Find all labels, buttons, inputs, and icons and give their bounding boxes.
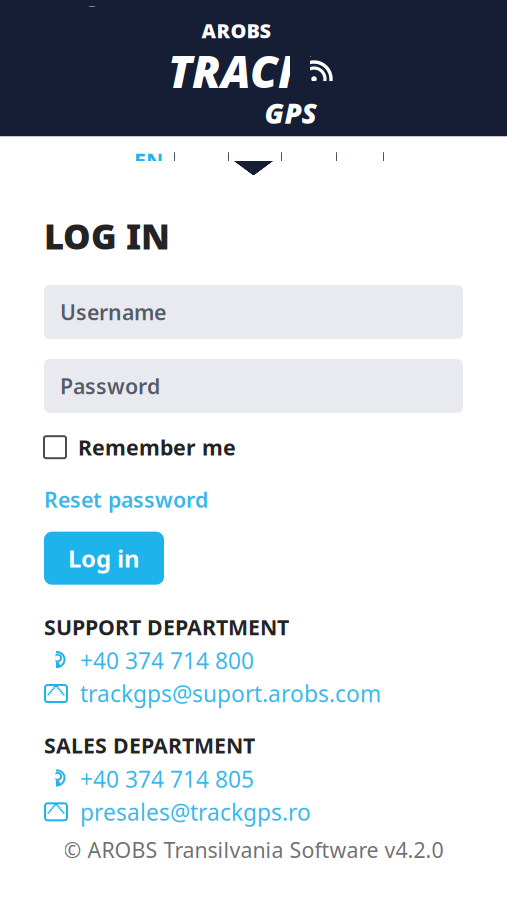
staticText: LOG IN — [44, 213, 170, 259]
staticText: trackgps@suport.arobs.com — [80, 678, 381, 709]
button[interactable]: Log in — [44, 532, 164, 585]
staticText: © AROBS Transilvania Software v4.2.0 — [63, 836, 443, 864]
staticText: Reset password — [44, 485, 208, 514]
staticText: Username — [60, 298, 166, 326]
staticText: TRACK — [168, 42, 307, 100]
button[interactable]: RU — [229, 143, 281, 178]
button[interactable]: presales@trackgps.ro — [44, 796, 463, 827]
button[interactable]: +40 374 714 805 — [44, 763, 463, 794]
staticText: RU — [240, 146, 270, 175]
staticText: SALES DEPARTMENT — [44, 731, 255, 759]
button[interactable]: Reset password — [44, 485, 208, 514]
staticText: GPS — [264, 94, 316, 131]
staticText: Password — [60, 372, 160, 400]
button[interactable]: trackgps@suport.arobs.com — [44, 678, 463, 709]
staticText: SUPPORT DEPARTMENT — [44, 613, 289, 641]
button[interactable]: EN — [123, 143, 174, 178]
button[interactable]: +40 374 714 800 — [44, 645, 463, 676]
button[interactable]: Remember me — [44, 433, 463, 461]
staticText: Remember me — [78, 433, 236, 461]
staticText: AROBS — [201, 17, 271, 44]
button[interactable]: Username — [44, 285, 463, 339]
button[interactable]: Password — [44, 359, 463, 413]
staticText: EN — [134, 146, 163, 175]
staticText: presales@trackgps.ro — [80, 797, 311, 827]
staticText: +40 374 714 800 — [80, 645, 254, 676]
staticText: Log in — [68, 542, 140, 574]
staticText: +40 374 714 805 — [80, 764, 254, 794]
